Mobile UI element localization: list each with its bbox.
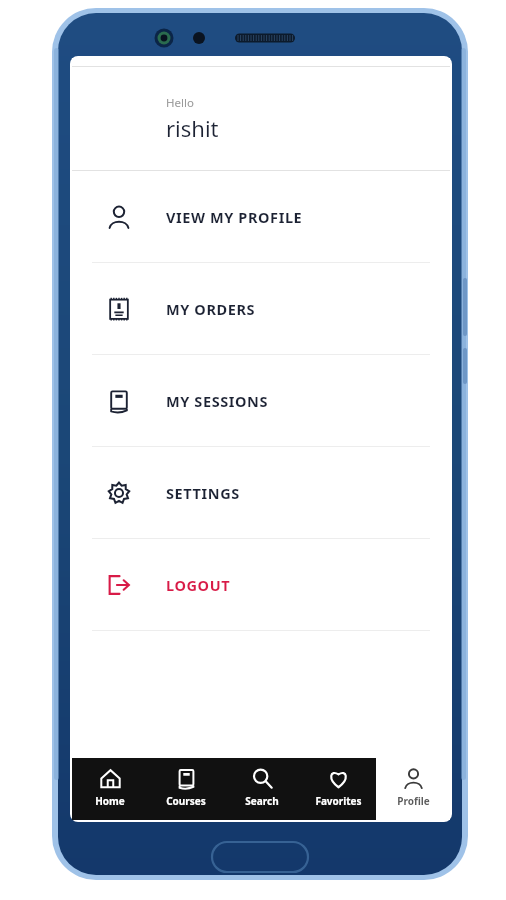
button[interactable]: Search [224,758,300,820]
staticText: SETTINGS [166,483,240,503]
button[interactable]: LOGOUT [72,539,450,630]
staticText: rishit [166,113,219,143]
button[interactable]: Favorites [300,758,376,820]
staticText: Search [245,794,279,808]
button[interactable]: Home [72,758,148,820]
staticText: Home [95,794,125,808]
staticText: Courses [166,794,206,808]
button[interactable]: Courses [148,758,224,820]
button[interactable]: MY ORDERS [72,263,450,354]
staticText: VIEW MY PROFILE [166,207,303,227]
button[interactable]: SETTINGS [72,447,450,538]
button[interactable]: Profile [376,758,450,820]
staticText: Profile [397,794,430,808]
staticText: Hello [166,95,194,111]
button[interactable]: MY SESSIONS [72,355,450,446]
staticText: MY ORDERS [166,299,256,319]
staticText: LOGOUT [166,575,231,595]
staticText: Favorites [315,794,362,808]
button[interactable]: VIEW MY PROFILE [72,171,450,262]
staticText: MY SESSIONS [166,391,269,411]
